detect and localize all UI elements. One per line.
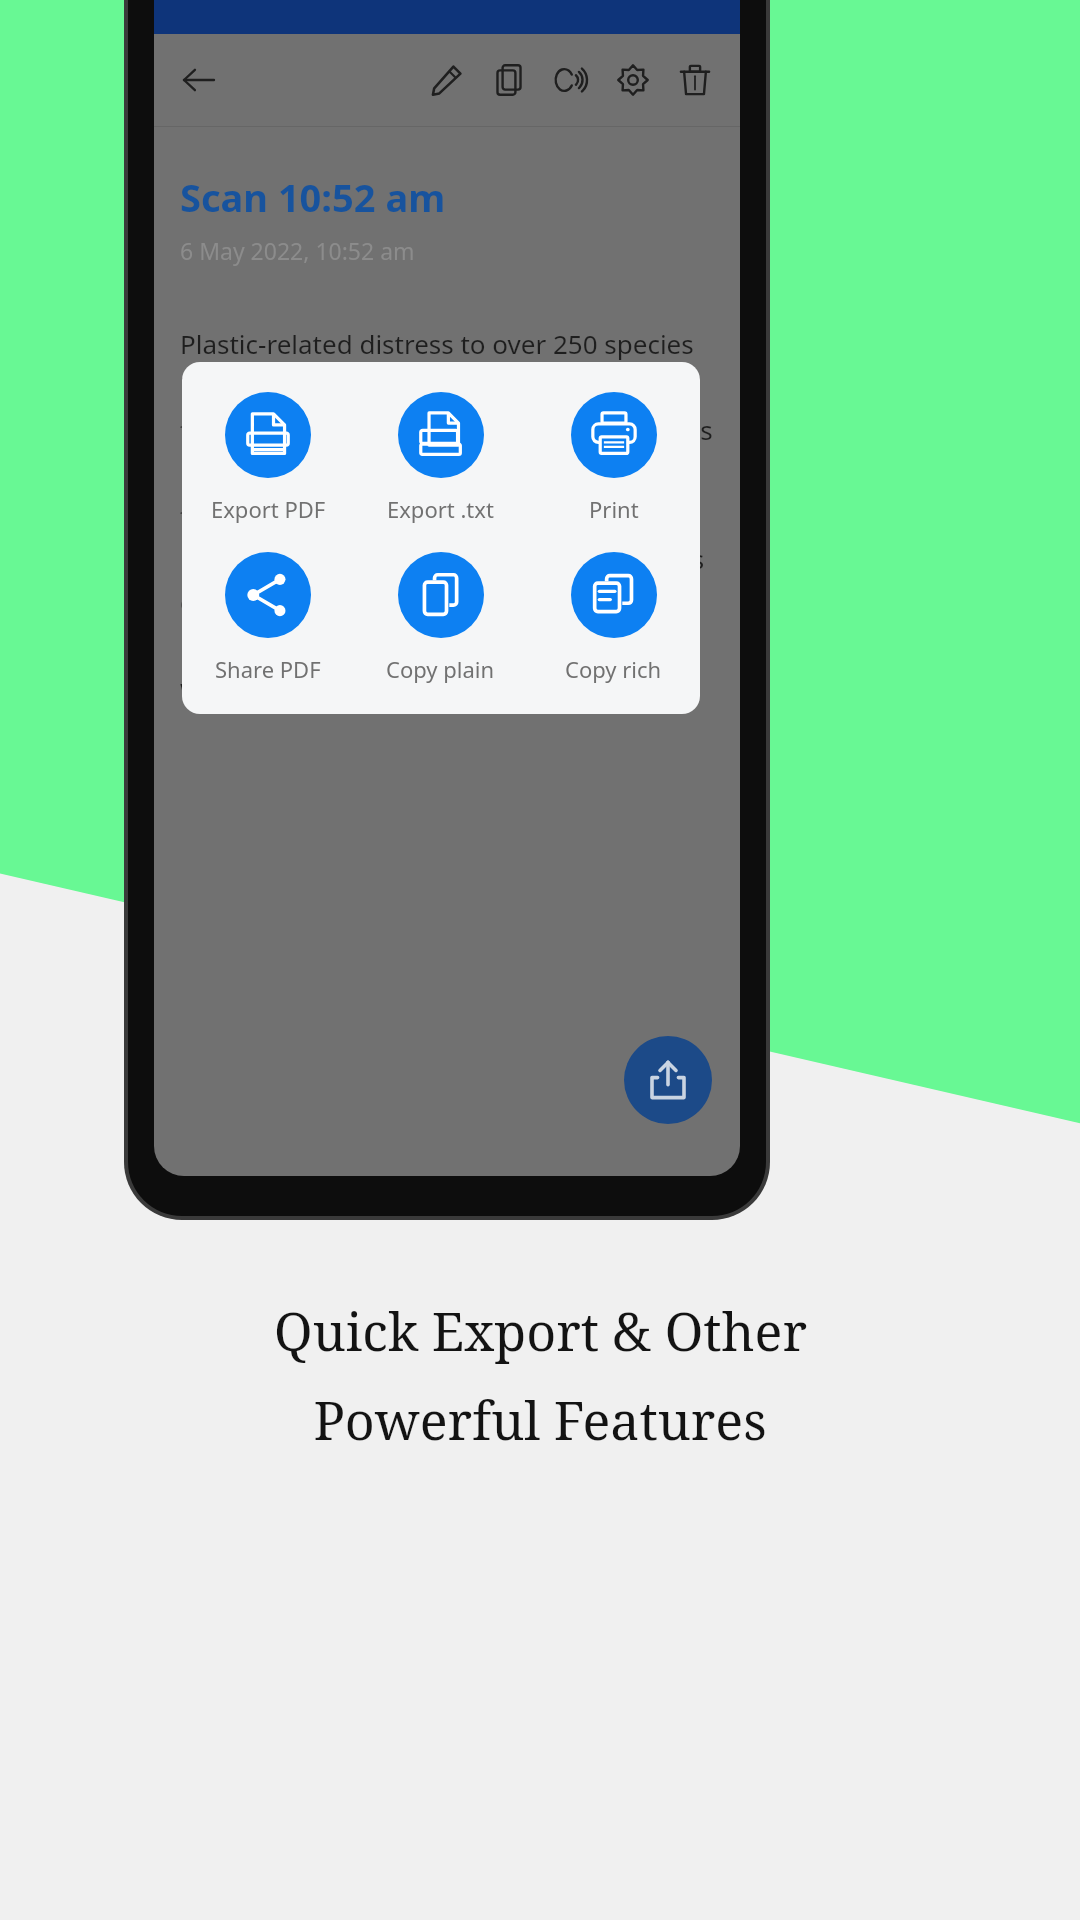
staticText: Copy rich [565,654,662,684]
staticText: Share PDF [215,654,321,684]
button[interactable]: Print [527,392,700,524]
button[interactable]: Read aloud [540,49,602,111]
button[interactable]: Export PDF [182,392,354,524]
button[interactable]: Copy plain [354,552,527,684]
button[interactable]: Settings [602,49,664,111]
staticText: Print [589,494,639,524]
button[interactable]: Delete [664,49,726,111]
button[interactable]: Share PDF [182,552,354,684]
staticText: Export .txt [387,494,494,524]
button[interactable]: Duplicate [478,49,540,111]
button[interactable]: Back [168,49,230,111]
staticText: 6 May 2022, 10:52 am [180,235,415,266]
staticText: Quick Export & Other [274,1295,807,1366]
button[interactable]: Copy rich [527,552,700,684]
staticText: Scan 10:52 am [180,171,446,223]
button[interactable]: Edit [416,49,478,111]
staticText: Plastic-related distress to over 250 spe… [180,326,714,705]
staticText: Powerful Features [313,1384,767,1455]
staticText: Copy plain [386,654,495,684]
button[interactable]: Export [624,1036,712,1124]
button[interactable]: Export .txt [354,392,527,524]
staticText: Export PDF [211,494,326,524]
